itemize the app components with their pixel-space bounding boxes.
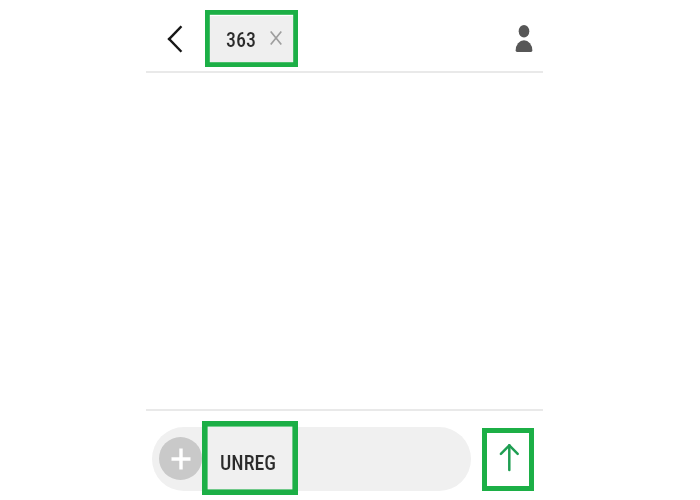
button[interactable]: Contact xyxy=(508,22,540,54)
button[interactable]: Send xyxy=(482,428,534,491)
button[interactable]: Add attachment xyxy=(159,437,202,480)
button[interactable]: UNREG xyxy=(152,427,471,491)
button[interactable]: Back xyxy=(148,16,194,62)
staticText: UNREG xyxy=(220,451,277,474)
button[interactable]: 363 xyxy=(209,16,294,62)
staticText: 363 xyxy=(226,28,257,51)
button[interactable]: Remove recipient xyxy=(268,30,284,46)
